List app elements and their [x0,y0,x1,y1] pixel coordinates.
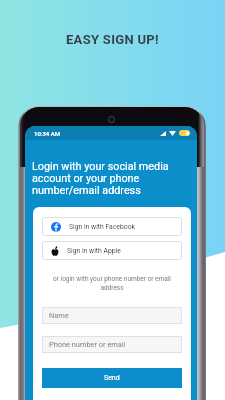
staticText: 10:34 AM [34,130,60,137]
button[interactable]: Sign in with Apple [42,241,182,260]
staticText: Name [49,311,69,320]
staticText: Sign in with Facebook [69,223,135,231]
staticText: Login with your social media account or … [32,160,169,197]
button[interactable]: Phone number or email [42,336,182,353]
staticText: Send [104,374,120,382]
button[interactable]: Sign in with Facebook [42,217,182,236]
button[interactable]: Name [42,307,182,324]
staticText: Sign in with Apple [67,247,121,255]
staticText: or login with your phone number or email… [42,275,182,291]
button[interactable]: Send [42,368,182,388]
staticText: Phone number or email [49,340,126,349]
staticText: EASY SIGN UP! [66,32,159,47]
